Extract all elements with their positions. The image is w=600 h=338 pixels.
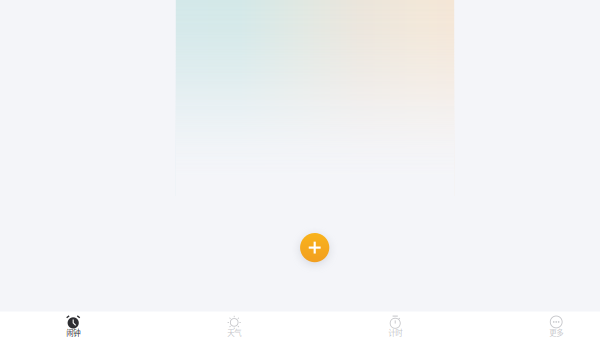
staticText: 闹钟 xyxy=(66,327,80,338)
staticText: 计时 xyxy=(388,327,402,338)
button[interactable]: 计时 xyxy=(315,312,476,338)
button[interactable]: Add alarm xyxy=(300,233,329,262)
staticText: 天气 xyxy=(227,327,241,338)
button[interactable]: 天气 xyxy=(154,312,315,338)
staticText: 更多 xyxy=(549,327,563,338)
button[interactable]: 更多 xyxy=(476,312,600,338)
button[interactable]: 闹钟 xyxy=(0,312,154,338)
